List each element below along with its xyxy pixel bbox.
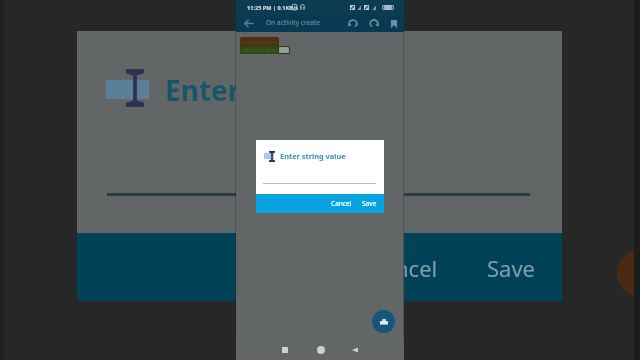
staticText: 11:25 PM | 0.1KB/s	[247, 4, 299, 12]
staticText: add parent directly	[242, 47, 281, 53]
staticText: Cancel	[331, 199, 352, 208]
staticText: ncel	[395, 253, 438, 283]
button[interactable]: Save	[357, 197, 382, 210]
button[interactable]: Redo	[365, 15, 382, 32]
button[interactable]: Back	[240, 15, 257, 32]
staticText: on activity create	[242, 39, 277, 45]
staticText: Enter string value	[280, 151, 346, 161]
button[interactable]: Back	[345, 340, 364, 359]
staticText: Save	[487, 253, 536, 283]
staticText: Enter	[165, 71, 241, 109]
button[interactable]: Recents	[275, 340, 294, 359]
button[interactable]: Add block	[372, 310, 395, 333]
button[interactable]: Save	[385, 15, 402, 32]
button[interactable]: Home	[311, 340, 330, 359]
staticText: On activity create	[266, 18, 321, 27]
button[interactable]: Undo	[344, 15, 361, 32]
staticText: Save	[362, 199, 377, 208]
button[interactable]: add parent directly	[240, 46, 279, 54]
button[interactable]: Cancel	[326, 197, 357, 210]
button[interactable]: on activity create	[240, 37, 279, 46]
